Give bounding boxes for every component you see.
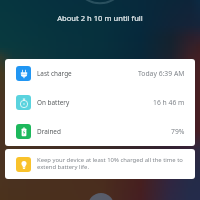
button[interactable]: Drained xyxy=(5,117,195,146)
staticText: 79% xyxy=(171,127,185,136)
button[interactable]: Keep your device at least 10% charged al… xyxy=(5,149,195,179)
staticText: About 2 h 10 m until full xyxy=(0,13,200,23)
staticText: Last charge xyxy=(37,69,72,78)
staticText: 16 h 46 m xyxy=(153,98,185,107)
button[interactable]: Last charge xyxy=(5,59,195,88)
staticText: On battery xyxy=(37,98,70,107)
button[interactable]: On battery xyxy=(5,88,195,117)
staticText: Drained xyxy=(37,127,61,136)
staticText: Keep your device at least 10% charged al… xyxy=(37,156,183,164)
staticText: extend battery life. xyxy=(37,163,90,171)
staticText: Today 6:39 AM xyxy=(138,69,185,78)
